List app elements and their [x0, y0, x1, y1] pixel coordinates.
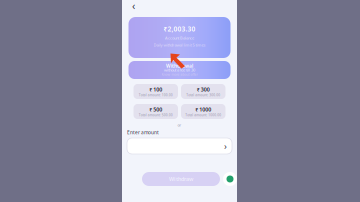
button[interactable]: Withdrawal [128, 61, 230, 79]
button[interactable]: Support chat [223, 172, 237, 186]
button[interactable]: ₹ 100 [133, 84, 178, 99]
staticText: Total amount: 100.00 [139, 93, 173, 97]
staticText: Withdrawal [166, 63, 193, 69]
staticText: Account Balance [165, 35, 194, 41]
staticText: or [177, 122, 181, 128]
button[interactable]: ₹ 500 [133, 104, 178, 119]
staticText: without a fee till 30 [164, 67, 195, 73]
staticText: Enter amount [127, 129, 159, 136]
staticText: Withdraw [169, 175, 193, 183]
staticText: ‹ [132, 0, 135, 13]
button[interactable]: › [127, 138, 232, 154]
staticText: Know more about offer [161, 72, 197, 77]
staticText: ₹ 300 [197, 86, 210, 93]
staticText: Daily withdrawal limit 5 times [153, 42, 205, 48]
staticText: Total amount: 300.00 [186, 93, 220, 97]
staticText: ₹2,003.30 [163, 24, 195, 34]
button[interactable]: ₹ 1000 [181, 104, 225, 119]
staticText: › [224, 140, 227, 152]
button[interactable]: Back [128, 0, 138, 11]
button[interactable]: Withdraw [142, 172, 220, 186]
button[interactable]: ₹ 300 [181, 84, 225, 99]
staticText: ₹ 500 [149, 106, 162, 113]
staticText: Total amount: 500.00 [139, 113, 173, 117]
staticText: ₹ 100 [149, 86, 162, 93]
staticText: Total amount: 1000.00 [185, 113, 221, 117]
staticText: ₹ 1000 [195, 106, 211, 113]
